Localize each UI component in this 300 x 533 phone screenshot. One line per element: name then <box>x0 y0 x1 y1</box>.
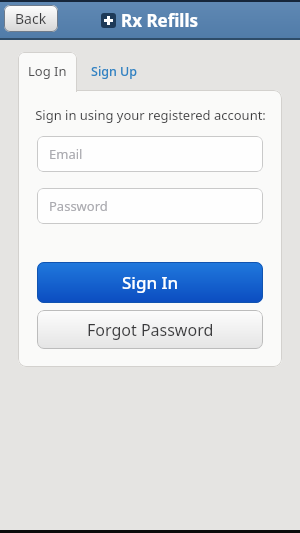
staticText: Log In <box>28 62 67 80</box>
staticText: Sign In <box>122 271 179 294</box>
button[interactable]: Email <box>37 136 263 172</box>
button[interactable]: Forgot Password <box>37 310 263 349</box>
button[interactable]: Back <box>4 5 58 32</box>
staticText: Forgot Password <box>87 319 214 341</box>
button[interactable]: Password <box>37 188 263 224</box>
staticText: Password <box>49 197 108 215</box>
staticText: Back <box>15 9 47 28</box>
staticText: Sign Up <box>91 63 138 80</box>
staticText: Email <box>49 145 83 163</box>
staticText: Rx Refills <box>121 9 199 32</box>
button[interactable]: Sign Up <box>82 52 146 90</box>
button[interactable]: Sign In <box>37 262 263 303</box>
staticText: Sign in using your registered account: <box>35 106 266 124</box>
button[interactable]: Log In <box>18 52 77 92</box>
